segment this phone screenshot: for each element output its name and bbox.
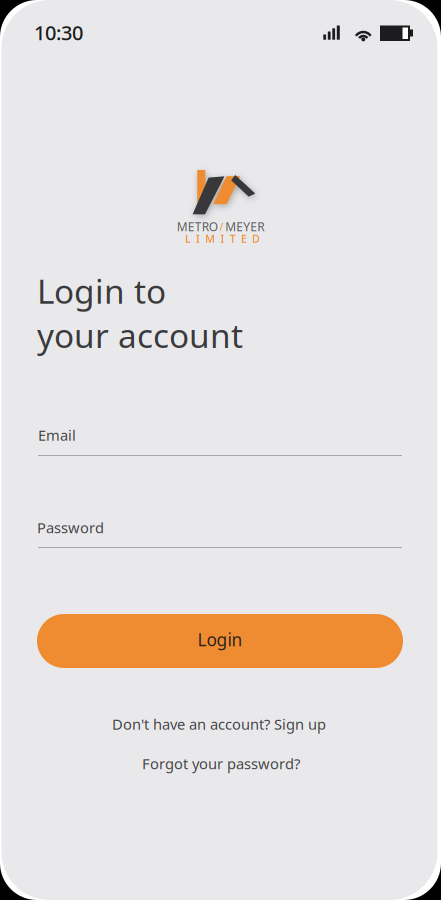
staticText: T	[230, 232, 236, 246]
staticText: E	[241, 232, 247, 246]
staticText: METRO	[177, 218, 218, 234]
staticText: MEYER	[225, 218, 264, 234]
staticText: 10:30	[34, 19, 83, 46]
staticText: Sign up	[274, 714, 326, 734]
staticText: I	[220, 232, 224, 246]
staticText: D	[252, 232, 260, 246]
staticText: Password	[37, 518, 104, 537]
staticText: L	[185, 232, 191, 246]
staticText: M	[205, 232, 215, 246]
button[interactable]: Sign up	[274, 714, 326, 734]
button[interactable]: Login	[37, 614, 403, 668]
staticText: Don't have an account?	[112, 714, 270, 734]
staticText: Email	[38, 425, 76, 445]
button[interactable]: Forgot your password?	[142, 754, 300, 773]
staticText: /	[219, 219, 223, 234]
staticText: Forgot your password?	[142, 754, 300, 773]
staticText: Login to your account	[37, 269, 243, 357]
staticText: Login	[197, 628, 242, 651]
staticText: I	[196, 232, 200, 246]
